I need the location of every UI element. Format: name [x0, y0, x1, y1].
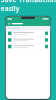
staticText: Save Translation easily: [0, 0, 55, 13]
button[interactable]: Back: [8, 22, 10, 25]
button[interactable]: [6, 37, 50, 43]
button[interactable]: [6, 30, 50, 36]
button[interactable]: [6, 43, 50, 50]
